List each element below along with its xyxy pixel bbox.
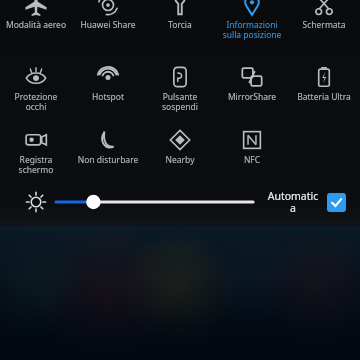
staticText: Hotspot [73,91,143,103]
button[interactable]: Brightness [24,190,48,214]
button[interactable]: Huawei Share [72,0,144,55]
button[interactable]: Nearby [144,118,216,181]
button[interactable]: Modalità aereo [0,0,72,55]
staticText: Huawei Share [73,19,143,31]
staticText: Torcia [145,19,215,31]
staticText: Batteria Ultra [289,91,359,103]
staticText: Nearby [145,154,215,166]
button[interactable]: Registra schermo [0,118,72,181]
button[interactable]: Automatica [267,189,346,215]
button[interactable]: NFC [216,118,288,181]
staticText: NFC [217,154,287,166]
button[interactable]: MirrorShare [216,55,288,118]
staticText: Protezione occhi [1,91,71,113]
button[interactable]: Torcia [144,0,216,55]
button[interactable]: Pulsante sospendi [144,55,216,118]
button[interactable]: Batteria Ultra [288,55,360,118]
staticText: Non disturbare [73,154,143,166]
staticText: Modalità aereo [1,19,71,31]
button[interactable]: Schermata [288,0,360,55]
staticText: Informazioni sulla posizione [217,19,287,41]
staticText: Registra schermo [1,154,71,176]
button[interactable]: Non disturbare [72,118,144,181]
staticText: Pulsante sospendi [145,91,215,113]
staticText: MirrorShare [217,91,287,103]
staticText: Schermata [289,19,359,31]
button[interactable]: Protezione occhi [0,55,72,118]
button[interactable]: Brightness slider [54,187,259,217]
staticText: Automatica [267,189,319,215]
button[interactable]: Hotspot [72,55,144,118]
button[interactable]: Informazioni sulla posizione [216,0,288,55]
